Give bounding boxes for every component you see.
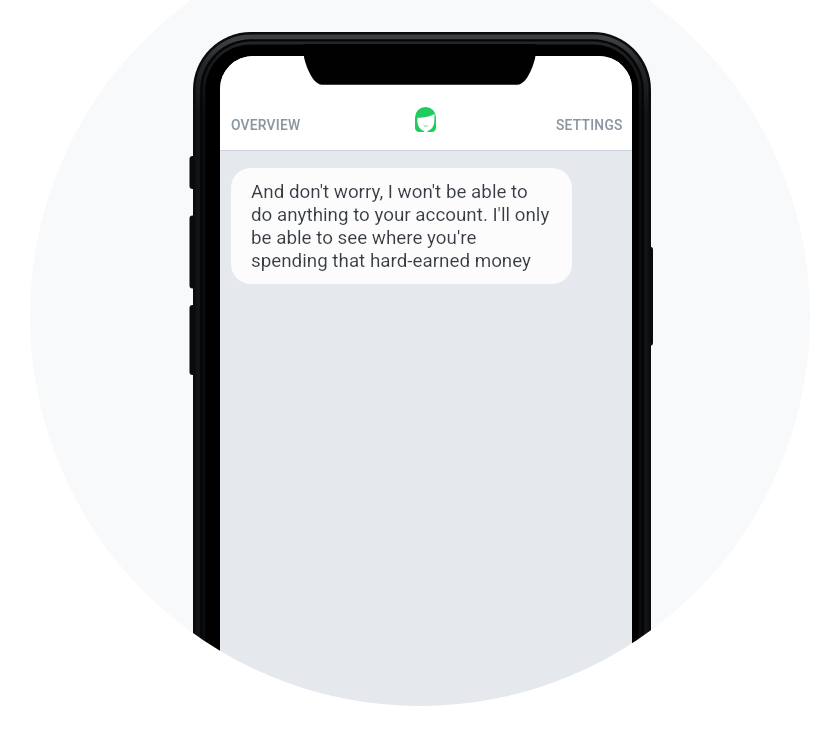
button[interactable]: OVERVIEW <box>220 110 310 140</box>
button[interactable]: And don't worry, I won't be able to do a… <box>231 168 572 284</box>
button[interactable]: SETTINGS <box>547 110 632 140</box>
staticText: OVERVIEW <box>231 117 301 133</box>
staticText: And don't worry, I won't be able to do a… <box>251 181 551 271</box>
staticText: SETTINGS <box>556 117 623 133</box>
button[interactable]: Profile <box>415 107 436 132</box>
